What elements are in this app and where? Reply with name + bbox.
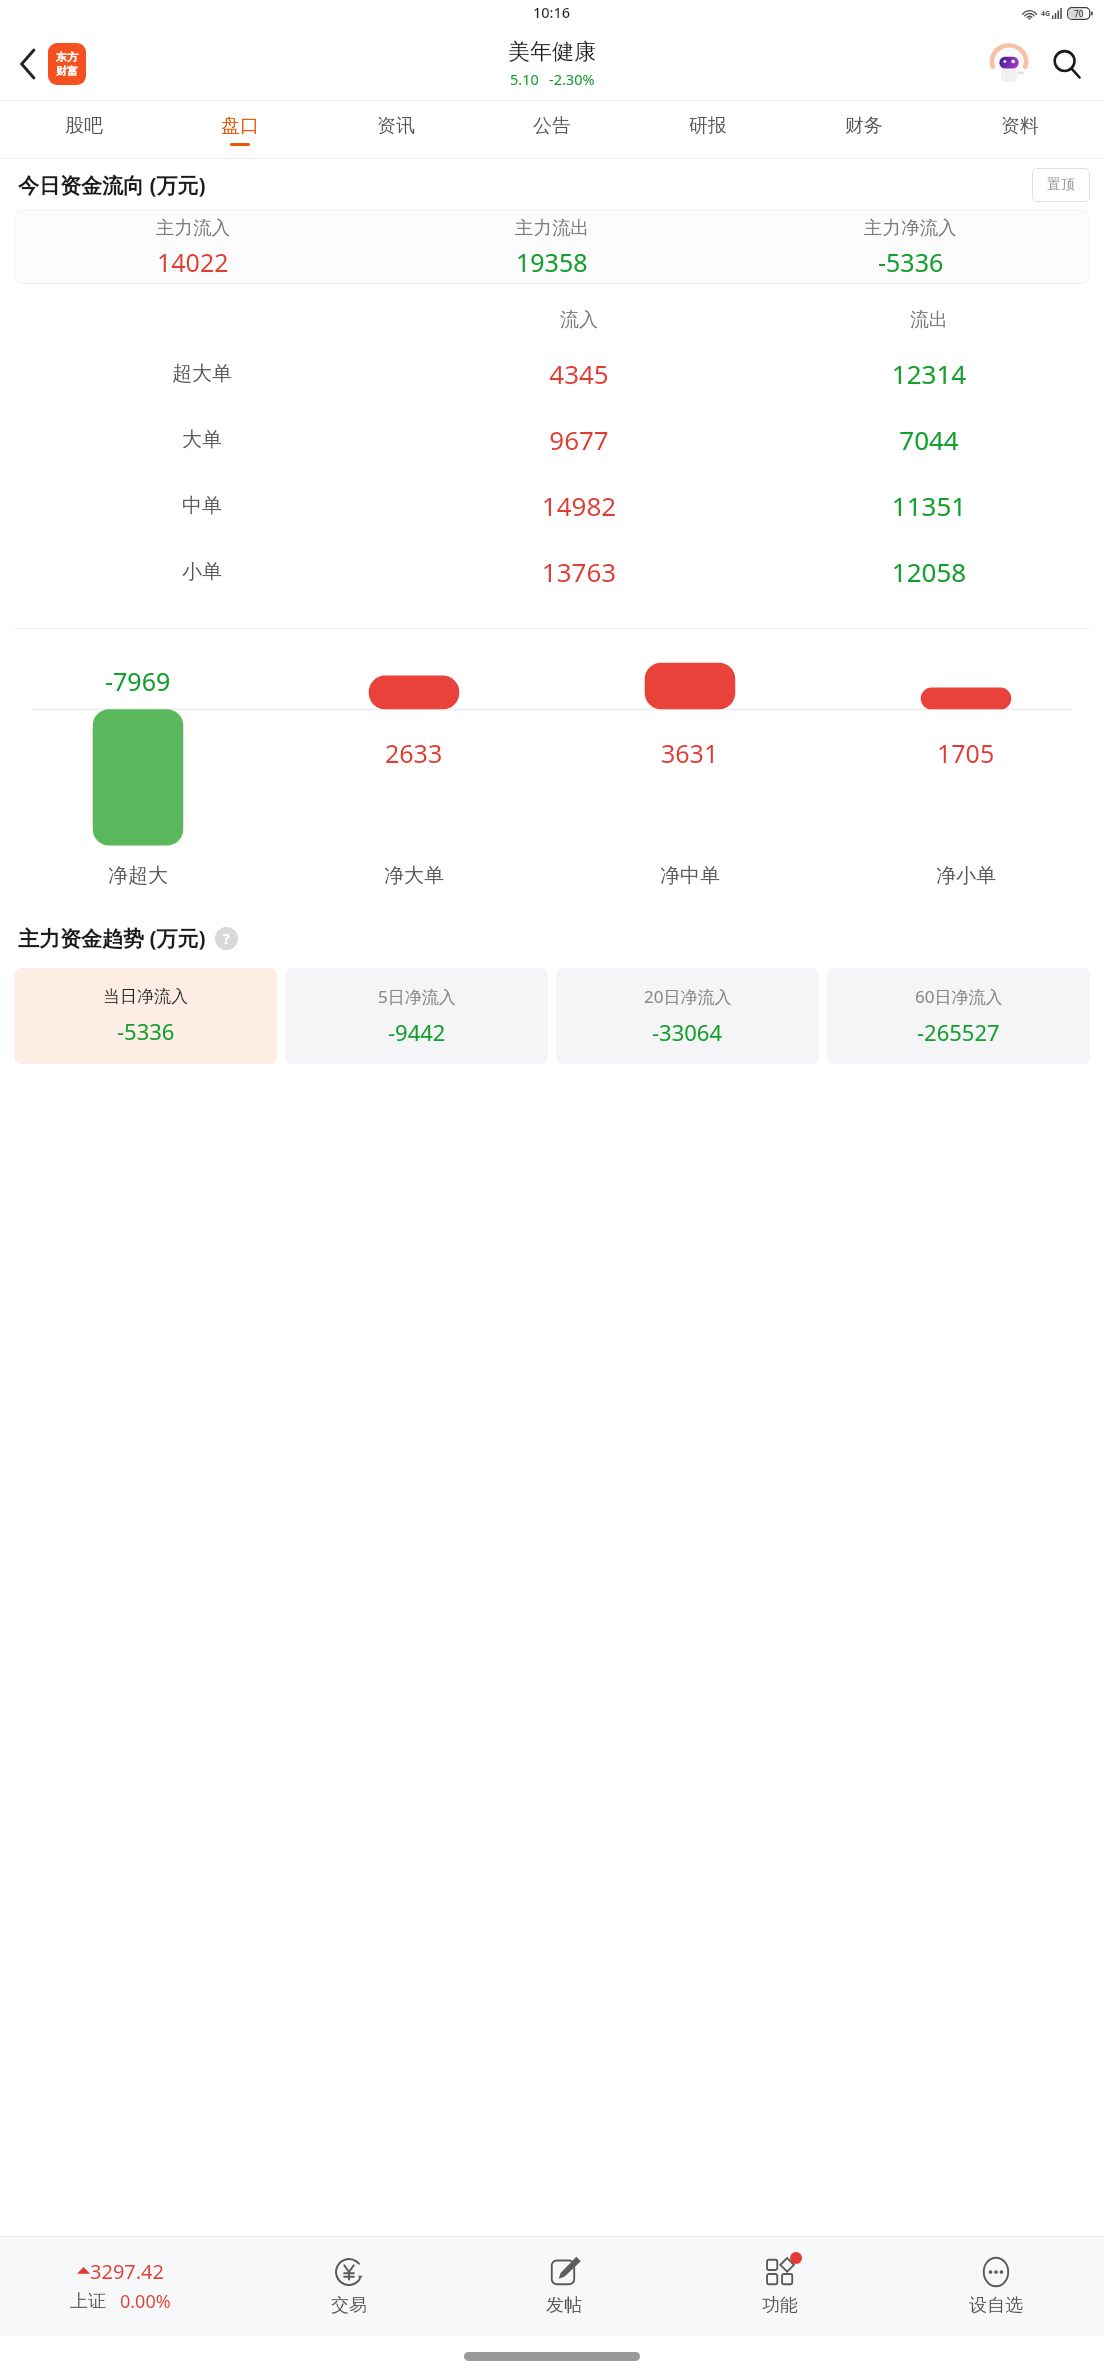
button[interactable]: 盘口: [162, 101, 318, 159]
staticText: 研报: [689, 114, 727, 138]
staticText: 资料: [1001, 114, 1039, 138]
staticText: 财务: [845, 114, 883, 138]
staticText: 9677: [404, 422, 754, 457]
button[interactable]: 股吧: [6, 101, 162, 159]
staticText: 5日净流入: [378, 985, 456, 1008]
button[interactable]: 置顶: [1032, 168, 1090, 202]
staticText: -5336: [117, 1016, 175, 1046]
staticText: 0.00%: [120, 2289, 171, 2314]
button[interactable]: 超大单: [0, 340, 1104, 406]
staticText: 主力净流入: [864, 216, 957, 239]
staticText: 小单: [182, 559, 222, 584]
staticText: 净中单: [660, 863, 720, 888]
staticText: 今日资金流向 (万元): [18, 171, 206, 200]
button[interactable]: AI assistant: [986, 41, 1032, 87]
staticText: 60日净流入: [915, 985, 1003, 1008]
staticText: ?: [223, 929, 230, 948]
staticText: -7969: [105, 664, 171, 698]
staticText: 流入: [404, 308, 754, 332]
staticText: 超大单: [172, 361, 232, 386]
button[interactable]: 设自选: [888, 2236, 1104, 2336]
staticText: 交易: [331, 2294, 367, 2317]
staticText: -33064: [652, 1017, 723, 1047]
staticText: 净超大: [108, 863, 168, 888]
button[interactable]: 5日净流入: [285, 968, 548, 1064]
staticText: 公告: [533, 114, 571, 138]
staticText: 中单: [182, 493, 222, 518]
staticText: 4G: [1041, 9, 1051, 19]
staticText: 上证: [70, 2290, 106, 2313]
staticText: 10:16: [533, 2, 571, 22]
staticText: -265527: [917, 1017, 1000, 1047]
staticText: 盘口: [221, 114, 259, 138]
staticText: 12058: [754, 554, 1104, 589]
staticText: 主力流出: [515, 216, 589, 239]
button[interactable]: Help: [215, 927, 238, 950]
button[interactable]: Back: [6, 42, 50, 86]
staticText: 发帖: [546, 2294, 582, 2317]
button[interactable]: 小单: [0, 538, 1104, 604]
button[interactable]: 美年健康: [508, 38, 596, 89]
staticText: 股吧: [65, 114, 103, 138]
button[interactable]: 财务: [786, 101, 942, 159]
staticText: 主力流入: [156, 216, 230, 239]
staticText: 当日净流入: [103, 986, 188, 1007]
button[interactable]: 60日净流入: [827, 968, 1090, 1064]
staticText: -9442: [388, 1017, 446, 1047]
staticText: 美年健康: [508, 38, 596, 66]
staticText: 主力资金趋势 (万元): [18, 924, 206, 953]
button[interactable]: 20日净流入: [556, 968, 819, 1064]
button[interactable]: 主力流入: [14, 210, 1090, 284]
button[interactable]: 当日净流入: [14, 968, 277, 1064]
staticText: 11351: [754, 488, 1104, 523]
button[interactable]: Search: [1042, 39, 1092, 89]
button[interactable]: 中单: [0, 472, 1104, 538]
button[interactable]: 东方财富: [48, 43, 86, 85]
staticText: 流出: [754, 308, 1104, 332]
button[interactable]: 3297.42: [0, 2236, 241, 2336]
staticText: 12314: [754, 356, 1104, 391]
staticText: 资讯: [377, 114, 415, 138]
button[interactable]: 功能: [672, 2236, 888, 2336]
staticText: 14982: [404, 488, 754, 523]
staticText: -5336: [878, 245, 944, 279]
staticText: 大单: [182, 427, 222, 452]
staticText: -2.30%: [549, 69, 595, 89]
staticText: 4345: [404, 356, 754, 391]
staticText: 设自选: [969, 2294, 1023, 2317]
staticText: 置顶: [1047, 176, 1075, 194]
staticText: 功能: [762, 2294, 798, 2317]
staticText: 3297.42: [90, 2258, 164, 2285]
button[interactable]: 大单: [0, 406, 1104, 472]
button[interactable]: 资料: [942, 101, 1098, 159]
button[interactable]: 交易: [241, 2236, 456, 2336]
staticText: 3631: [661, 736, 719, 770]
button[interactable]: 发帖: [456, 2236, 672, 2336]
button[interactable]: 公告: [474, 101, 630, 159]
staticText: 20日净流入: [644, 985, 732, 1008]
staticText: 净小单: [936, 863, 996, 888]
staticText: 1705: [937, 736, 995, 770]
staticText: 东方: [56, 50, 78, 64]
staticText: 7044: [754, 422, 1104, 457]
button[interactable]: 资讯: [318, 101, 474, 159]
staticText: 财富: [56, 64, 78, 78]
button[interactable]: 研报: [630, 101, 786, 159]
staticText: 14022: [157, 245, 229, 279]
staticText: 5.10: [510, 69, 539, 89]
staticText: 净大单: [384, 863, 444, 888]
staticText: 2633: [385, 736, 443, 770]
staticText: 19358: [516, 245, 588, 279]
staticText: 70: [1074, 8, 1084, 20]
staticText: 13763: [404, 554, 754, 589]
